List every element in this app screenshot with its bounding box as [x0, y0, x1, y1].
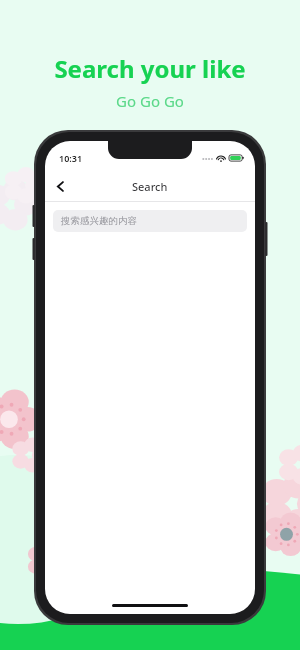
button[interactable]: 搜索感兴趣的内容 — [53, 210, 247, 232]
staticText: 10:31 — [59, 152, 83, 164]
staticText: 搜索感兴趣的内容 — [61, 215, 137, 227]
staticText: Search — [132, 179, 168, 194]
button[interactable]: Back — [45, 171, 75, 201]
staticText: Search your like — [54, 52, 246, 85]
staticText: Go Go Go — [116, 91, 184, 111]
